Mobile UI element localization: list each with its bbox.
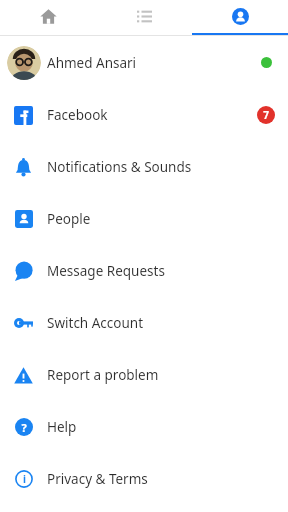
button[interactable]: i bbox=[0, 453, 288, 505]
button[interactable]: Switch Account bbox=[0, 297, 288, 349]
button[interactable]: Message Requests bbox=[0, 245, 288, 297]
staticText: Message Requests bbox=[47, 262, 165, 280]
button[interactable]: People bbox=[0, 193, 288, 245]
staticText: Switch Account bbox=[47, 314, 144, 332]
staticText: People bbox=[47, 210, 91, 228]
staticText: Help bbox=[47, 418, 77, 436]
staticText: i bbox=[23, 472, 26, 486]
button[interactable]: Facebook bbox=[0, 89, 288, 141]
staticText: Notifications & Sounds bbox=[47, 158, 192, 176]
staticText: Facebook bbox=[47, 106, 108, 124]
staticText: Ahmed Ansari bbox=[47, 54, 137, 72]
button[interactable]: Ahmed Ansari bbox=[0, 36, 288, 89]
staticText: 7 bbox=[263, 108, 269, 122]
button[interactable]: ? bbox=[0, 401, 288, 453]
button[interactable]: Feed bbox=[96, 0, 192, 35]
button[interactable]: Profile bbox=[192, 0, 288, 35]
button[interactable]: Home bbox=[0, 0, 96, 35]
button[interactable]: Notifications & Sounds bbox=[0, 141, 288, 193]
staticText: ? bbox=[21, 420, 27, 435]
button[interactable]: Report a problem bbox=[0, 349, 288, 401]
staticText: Report a problem bbox=[47, 366, 159, 384]
staticText: Privacy & Terms bbox=[47, 470, 148, 488]
